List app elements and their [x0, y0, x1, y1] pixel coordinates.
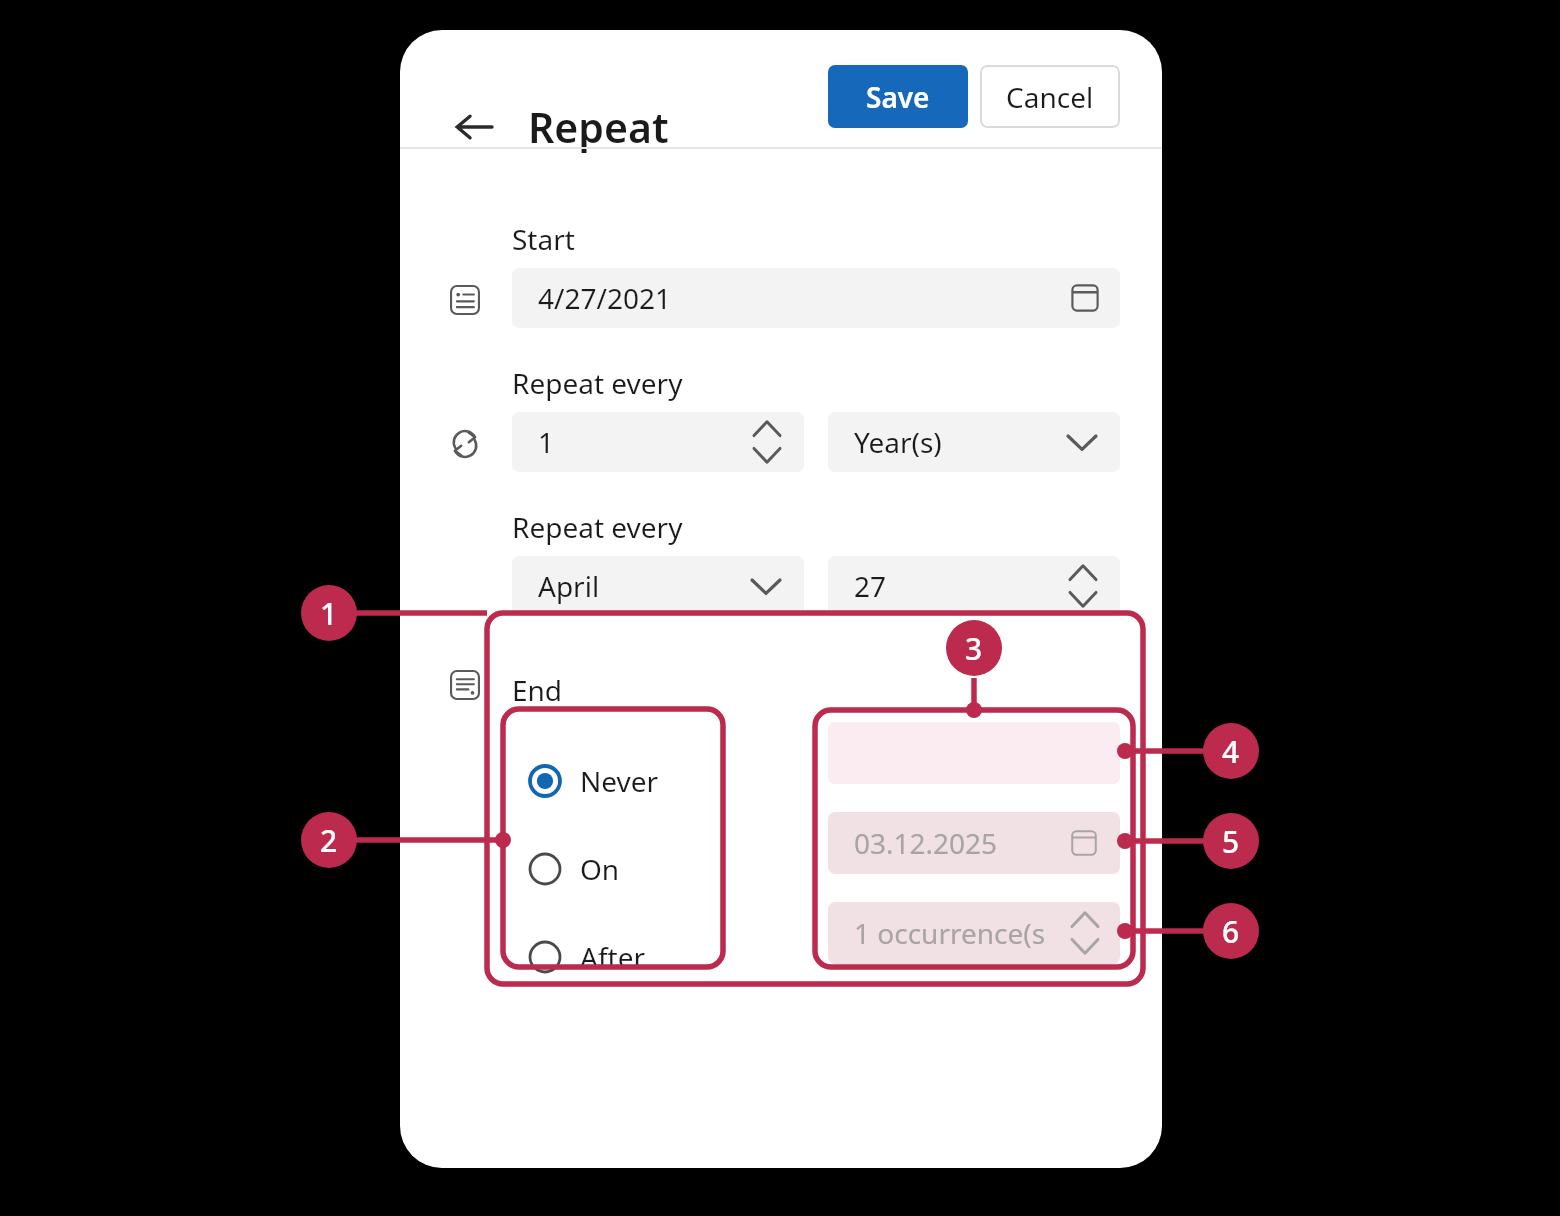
staticText: 27: [854, 567, 887, 605]
button[interactable]: Never: [528, 753, 738, 809]
staticText: 03.12.2025: [854, 824, 998, 862]
button[interactable]: 27: [828, 556, 1120, 616]
staticText: 4: [1222, 731, 1240, 772]
staticText: 4/27/2021: [538, 279, 671, 317]
staticText: Repeat every: [512, 364, 683, 402]
button[interactable]: April: [512, 556, 804, 616]
staticText: 2: [320, 820, 338, 861]
button[interactable]: 1: [512, 412, 804, 472]
button[interactable]: Save: [828, 65, 968, 128]
staticText: 3: [965, 628, 983, 669]
button[interactable]: Year(s): [828, 412, 1120, 472]
staticText: 1: [320, 593, 338, 634]
staticText: 6: [1222, 911, 1240, 952]
button[interactable]: 03.12.2025: [828, 812, 1120, 874]
button[interactable]: Cancel: [980, 65, 1120, 128]
staticText: Save: [866, 78, 930, 116]
staticText: 1 occurrence(s: [854, 914, 1046, 952]
staticText: 5: [1222, 821, 1240, 862]
button[interactable]: Back: [442, 95, 506, 159]
button[interactable]: After: [528, 929, 738, 985]
staticText: April: [538, 567, 600, 605]
staticText: Cancel: [1006, 78, 1094, 116]
staticText: On: [580, 850, 620, 888]
button[interactable]: [828, 722, 1120, 784]
staticText: Repeat every: [512, 508, 683, 546]
button[interactable]: 1 occurrence(s: [828, 902, 1120, 964]
staticText: 1: [538, 423, 555, 461]
staticText: Start: [512, 220, 575, 258]
button[interactable]: On: [528, 841, 738, 897]
staticText: Repeat: [528, 99, 669, 155]
button[interactable]: 4/27/2021: [512, 268, 1120, 328]
staticText: End: [512, 671, 563, 709]
staticText: Never: [580, 762, 659, 800]
staticText: Year(s): [854, 423, 942, 461]
staticText: After: [580, 938, 645, 976]
